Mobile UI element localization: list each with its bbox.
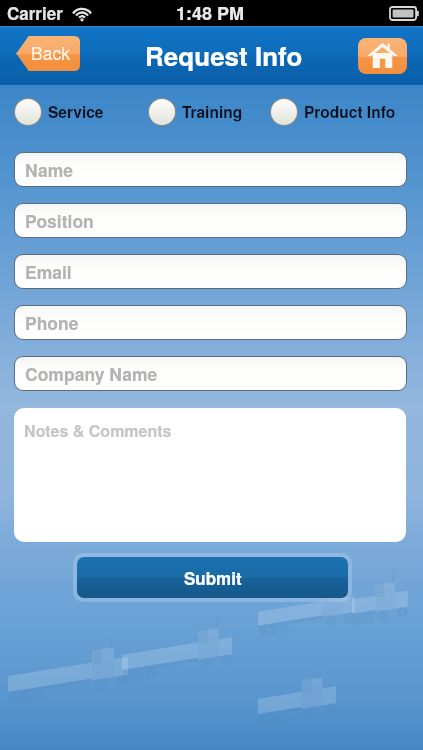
- staticText: Service: [48, 101, 104, 123]
- staticText: Training: [182, 101, 243, 123]
- staticText: Phone: [25, 310, 79, 335]
- staticText: Notes & Comments: [24, 419, 172, 442]
- staticText: Name: [25, 157, 73, 182]
- staticText: Company Name: [25, 361, 158, 386]
- staticText: Position: [25, 208, 94, 233]
- staticText: Product Info: [304, 101, 396, 123]
- button[interactable]: Position: [15, 204, 406, 237]
- staticText: Email: [25, 259, 72, 284]
- button[interactable]: Email: [15, 255, 406, 288]
- button[interactable]: Notes & Comments: [14, 408, 406, 542]
- button[interactable]: Service: [14, 98, 104, 126]
- button[interactable]: Phone: [15, 306, 406, 339]
- button[interactable]: Company Name: [15, 357, 406, 390]
- button[interactable]: Submit: [77, 557, 348, 598]
- staticText: Carrier: [7, 1, 63, 25]
- button[interactable]: Name: [15, 153, 406, 186]
- button[interactable]: Home: [358, 38, 407, 74]
- staticText: Back: [31, 40, 70, 65]
- button[interactable]: Training: [148, 98, 243, 126]
- button[interactable]: Product Info: [270, 98, 396, 126]
- staticText: Submit: [184, 566, 242, 590]
- staticText: 1:48 PM: [176, 0, 245, 26]
- button[interactable]: Back: [15, 36, 80, 71]
- staticText: Request Info: [145, 37, 303, 74]
